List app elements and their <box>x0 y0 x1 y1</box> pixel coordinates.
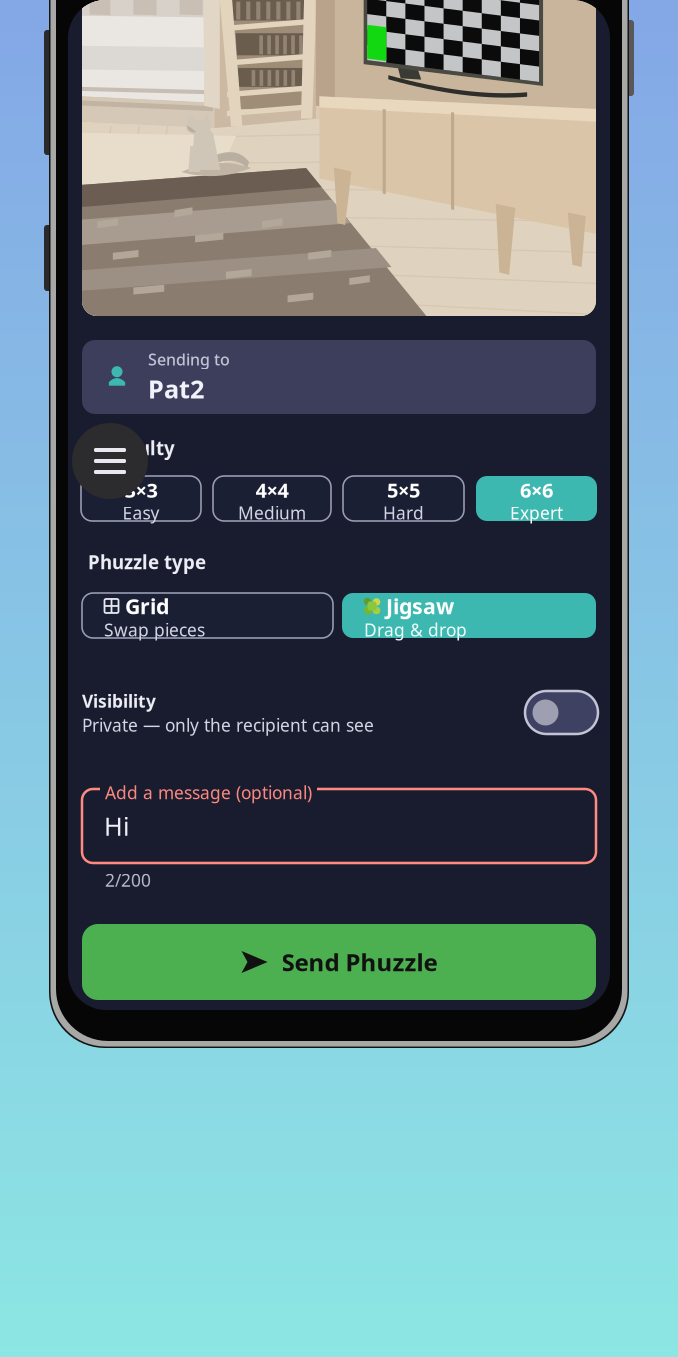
staticText: Pat2 <box>148 372 204 405</box>
staticText: Sending to <box>148 349 230 370</box>
button[interactable]: 5×5 <box>343 476 464 521</box>
staticText: Private — only the recipient can see <box>82 713 374 736</box>
button[interactable]: Send Phuzzle <box>82 924 596 1000</box>
staticText: Phuzzle type <box>88 550 206 574</box>
button[interactable]: 4×4 <box>213 476 331 521</box>
staticText: Swap pieces <box>104 618 205 641</box>
staticText: Add a message (optional) <box>105 781 312 804</box>
staticText: Hard <box>383 501 424 524</box>
staticText: Hi <box>104 809 130 843</box>
staticText: 5×5 <box>387 477 420 503</box>
staticText: Jigsaw <box>386 592 454 620</box>
staticText: 3×3 <box>124 477 157 503</box>
staticText: Send Phuzzle <box>281 946 437 978</box>
button[interactable]: 6×6 <box>476 476 597 521</box>
button[interactable]: Visibility, private <box>525 691 598 734</box>
button[interactable]: 3×3 <box>81 476 201 521</box>
button[interactable]: Sending to <box>82 340 596 414</box>
button[interactable]: Grid <box>82 593 333 638</box>
staticText: Easy <box>122 501 159 524</box>
staticText: 4×4 <box>255 477 288 503</box>
staticText: Expert <box>510 501 563 524</box>
staticText: 6×6 <box>520 477 553 503</box>
staticText: Medium <box>238 501 306 524</box>
button[interactable]: Menu <box>72 423 148 499</box>
staticText: Grid <box>125 592 169 620</box>
staticText: Difficulty <box>88 436 175 460</box>
staticText: 2/200 <box>105 868 151 891</box>
staticText: Visibility <box>82 689 156 712</box>
staticText: Drag & drop <box>364 618 467 641</box>
button[interactable]: Jigsaw <box>342 593 596 638</box>
